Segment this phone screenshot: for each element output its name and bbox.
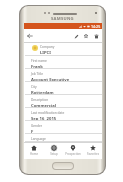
staticText: Rotterdam <box>31 90 54 95</box>
staticText: Home <box>30 152 38 156</box>
staticText: Sep 16, 2015 <box>31 116 57 121</box>
staticText: F <box>31 129 34 134</box>
button[interactable]: Favorite <box>81 31 91 41</box>
button[interactable]: Gender <box>24 121 102 134</box>
button[interactable]: Favorites <box>83 143 102 159</box>
staticText: Favorites <box>87 152 99 156</box>
staticText: City <box>31 85 37 89</box>
staticText: LIPCI <box>40 50 51 56</box>
button[interactable]: Language <box>24 134 102 142</box>
staticText: Language <box>31 137 46 141</box>
button[interactable]: First name <box>24 56 102 69</box>
staticText: Account Executive <box>31 77 70 82</box>
staticText: Setup <box>50 152 58 156</box>
button[interactable]: Setup <box>44 143 63 159</box>
staticText: Description <box>31 98 49 102</box>
button[interactable]: Delete <box>91 31 101 41</box>
staticText: Frank <box>31 64 43 69</box>
button[interactable]: Job Title <box>24 69 102 82</box>
staticText: Commercial <box>31 103 56 108</box>
staticText: First name <box>31 59 47 63</box>
button[interactable]: Company <box>24 43 102 56</box>
button[interactable]: Description <box>24 95 102 108</box>
button[interactable]: City <box>24 82 102 95</box>
staticText: Prospection <box>65 152 81 156</box>
staticText: Gender <box>31 124 43 128</box>
button[interactable]: Back <box>25 31 35 41</box>
staticText: Job Title <box>31 72 43 76</box>
button[interactable]: Prospection <box>63 143 82 159</box>
staticText: SAMSUNG <box>51 16 74 22</box>
button[interactable]: Home <box>24 143 43 159</box>
button[interactable]: Edit <box>71 31 81 41</box>
staticText: 14:25 <box>91 24 101 29</box>
staticText: Last modification date <box>31 111 65 115</box>
staticText: Company <box>40 45 55 49</box>
button[interactable]: Last modification date <box>24 108 102 121</box>
